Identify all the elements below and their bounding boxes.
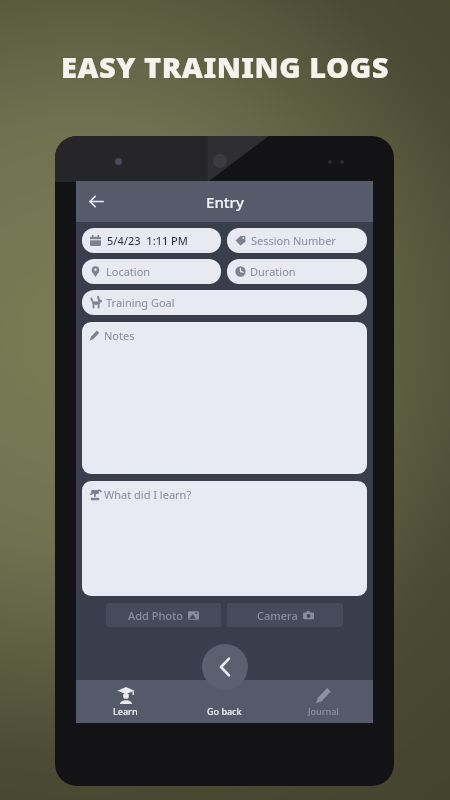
staticText: Add Photo — [128, 608, 183, 623]
staticText: Go back — [207, 705, 242, 717]
button[interactable]: Learn — [76, 680, 175, 723]
staticText: Learn — [113, 705, 138, 717]
staticText: Notes — [104, 328, 135, 343]
button[interactable]: Duration — [227, 259, 367, 284]
staticText: What did I learn? — [104, 487, 192, 502]
staticText: Camera — [257, 608, 298, 623]
button[interactable]: Training Goal — [82, 290, 367, 315]
button[interactable]: Add Photo — [106, 603, 221, 627]
staticText: Session Number — [251, 233, 336, 248]
staticText: Entry — [97, 192, 353, 212]
button[interactable]: Notes — [82, 322, 367, 474]
staticText: Training Goal — [106, 295, 175, 310]
staticText: 5/4/23 1:11 PM — [107, 233, 188, 248]
button[interactable]: What did I learn? — [82, 481, 367, 596]
button[interactable]: Journal — [274, 680, 373, 723]
button[interactable]: Session Number — [227, 228, 367, 253]
button[interactable]: Back — [76, 181, 117, 222]
button[interactable]: Go back — [175, 680, 274, 723]
staticText: EASY TRAINING LOGS — [61, 47, 389, 86]
staticText: Location — [106, 264, 151, 279]
staticText: Duration — [250, 264, 296, 279]
button[interactable]: Camera — [227, 603, 343, 627]
staticText: Journal — [308, 705, 339, 717]
button[interactable]: 5/4/23 1:11 PM — [82, 228, 221, 253]
button[interactable]: Location — [82, 259, 221, 284]
button[interactable]: Go back — [202, 644, 248, 690]
